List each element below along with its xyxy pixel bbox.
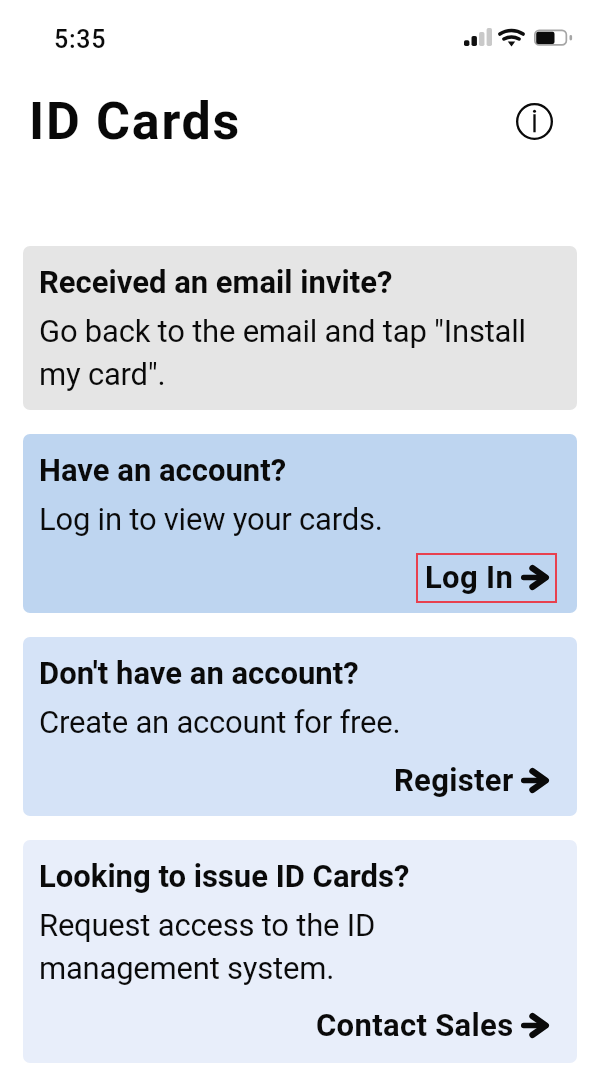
button[interactable]: Register (385, 756, 557, 806)
button[interactable]: Contact Sales (307, 1001, 557, 1051)
staticText: Request access to the ID management syst… (39, 907, 561, 987)
staticText: Register (394, 762, 514, 798)
staticText: Have an account? (39, 452, 287, 488)
staticText: Log In (425, 559, 514, 595)
staticText: 5:35 (54, 25, 107, 54)
staticText: Create an account for free. (39, 704, 401, 740)
button[interactable]: Looking to issue ID Cards? (23, 840, 577, 1063)
staticText: Looking to issue ID Cards? (39, 858, 410, 894)
button[interactable]: Log In (416, 553, 557, 603)
staticText: ID Cards (29, 91, 242, 152)
button[interactable]: Don't have an account? (23, 637, 577, 816)
staticText: Don't have an account? (39, 655, 359, 691)
button[interactable]: Received an email invite? (23, 246, 577, 410)
staticText: Go back to the email and tap "Install my… (39, 313, 561, 393)
staticText: Contact Sales (316, 1007, 514, 1043)
staticText: Log in to view your cards. (39, 501, 383, 537)
button[interactable]: Have an account? (23, 434, 577, 613)
staticText: Received an email invite? (39, 264, 393, 300)
button[interactable]: Information (504, 91, 565, 152)
